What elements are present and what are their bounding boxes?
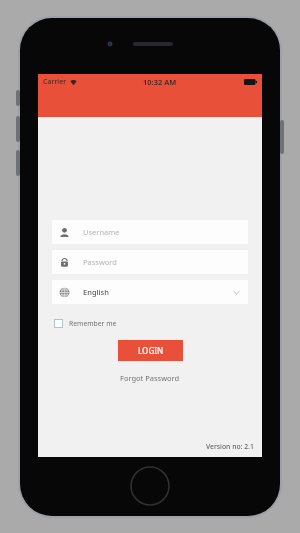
other: Language <box>59 287 70 298</box>
button[interactable]: Forgot Password <box>117 370 183 386</box>
other: Username <box>59 227 70 238</box>
staticText: 10:32 AM <box>143 77 177 87</box>
staticText: Version no: 2.1 <box>206 442 254 451</box>
staticText: Username <box>83 227 120 237</box>
other: Password <box>59 257 70 268</box>
staticText: Password <box>83 257 117 267</box>
staticText: LOGIN <box>138 345 164 356</box>
button[interactable]: Remember me <box>52 317 119 330</box>
staticText: Remember me <box>69 319 117 328</box>
button[interactable]: Language <box>52 280 248 304</box>
staticText: Carrier <box>43 77 67 87</box>
button[interactable]: LOGIN <box>118 340 183 361</box>
staticText: English <box>83 287 109 297</box>
button[interactable]: Username <box>52 220 248 244</box>
button[interactable]: Password <box>52 250 248 274</box>
